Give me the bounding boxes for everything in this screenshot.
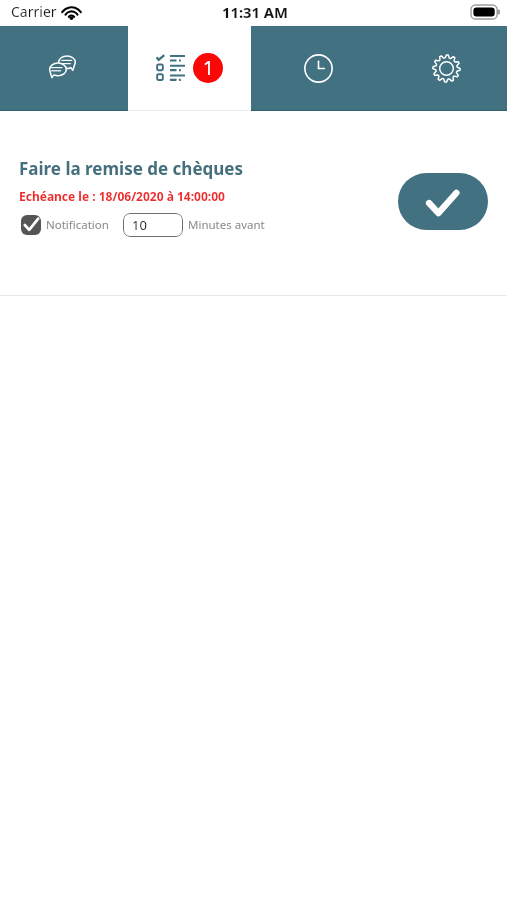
staticText: Echéance le : 18/06/2020 à 14:00:00 xyxy=(19,188,225,204)
button[interactable]: Minutes before xyxy=(123,213,183,237)
staticText: 11:31 AM xyxy=(222,2,289,22)
staticText: Notification xyxy=(46,217,109,233)
staticText: Minutes avant xyxy=(188,217,265,233)
staticText: Faire la remise de chèques xyxy=(19,157,244,180)
button[interactable]: Faire la remise de chèques xyxy=(0,157,507,237)
button[interactable]: Notification enabled xyxy=(21,215,41,235)
staticText: 10 xyxy=(132,216,147,234)
staticText: Carrier xyxy=(11,2,57,21)
button[interactable]: Tasks xyxy=(128,26,251,111)
button[interactable]: History xyxy=(251,26,379,111)
button[interactable]: Settings xyxy=(379,26,507,111)
staticText: 1 xyxy=(203,55,214,81)
button[interactable]: Messages xyxy=(0,26,128,111)
button[interactable]: Mark task done xyxy=(398,173,488,230)
